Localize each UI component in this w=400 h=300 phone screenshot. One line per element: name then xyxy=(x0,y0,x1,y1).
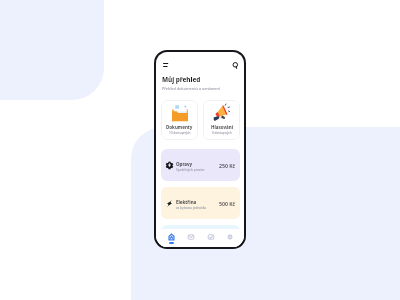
button[interactable]: Opravy xyxy=(161,149,240,181)
staticText: Opravy xyxy=(176,161,193,167)
staticText: Přehled dokumentů a oznámení xyxy=(162,86,220,91)
button[interactable]: Hlasování xyxy=(203,100,240,140)
staticText: Společných prostor xyxy=(176,168,205,172)
staticText: Hlasování xyxy=(211,124,233,130)
staticText: Můj přehled xyxy=(162,75,201,84)
button[interactable] xyxy=(161,225,240,247)
button[interactable]: Menu xyxy=(159,59,171,71)
button[interactable]: Elektřina xyxy=(161,187,240,219)
staticText: 250 Kč xyxy=(219,162,236,169)
button[interactable]: Dokumenty xyxy=(161,100,198,140)
button[interactable]: Search xyxy=(229,59,241,71)
staticText: za bytovou jednotku xyxy=(176,206,207,210)
button[interactable]: Home xyxy=(162,229,181,247)
button[interactable]: Settings xyxy=(220,229,239,247)
button[interactable]: Documents xyxy=(201,229,220,247)
staticText: 10 dostupných xyxy=(169,131,191,135)
button[interactable]: Messages xyxy=(181,229,200,247)
staticText: Elektřina xyxy=(176,199,197,205)
staticText: 500 Kč xyxy=(219,200,236,207)
staticText: 0 dostupných xyxy=(212,131,232,135)
staticText: Dokumenty xyxy=(166,124,193,130)
